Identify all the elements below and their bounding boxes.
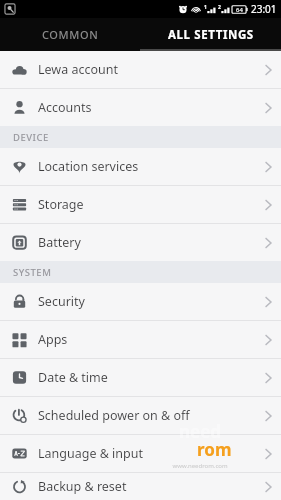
button[interactable]: Language & input: [0, 435, 281, 472]
staticText: DEVICE: [13, 131, 49, 144]
button[interactable]: ALL SETTINGS: [140, 18, 281, 51]
staticText: 23:01: [251, 2, 277, 16]
button[interactable]: Apps: [0, 321, 281, 358]
staticText: 1: [204, 4, 207, 11]
button[interactable]: Accounts: [0, 89, 281, 126]
staticText: SYSTEM: [13, 266, 52, 279]
staticText: Storage: [38, 196, 255, 213]
staticText: Scheduled power on & off: [38, 407, 255, 424]
staticText: COMMON: [42, 27, 99, 42]
staticText: ALL SETTINGS: [168, 27, 254, 43]
button[interactable]: Backup & reset: [0, 473, 281, 500]
staticText: Backup & reset: [38, 478, 255, 495]
staticText: Location services: [38, 158, 255, 175]
button[interactable]: Date & time: [0, 359, 281, 396]
staticText: Accounts: [38, 99, 255, 116]
staticText: 64: [236, 6, 243, 14]
staticText: need: [179, 420, 222, 443]
button[interactable]: Security: [0, 283, 281, 320]
staticText: Apps: [38, 331, 255, 348]
staticText: www.needrom.com: [172, 462, 228, 470]
staticText: 2: [218, 4, 221, 11]
staticText: Date & time: [38, 369, 255, 386]
staticText: Lewa account: [38, 61, 255, 78]
button[interactable]: Battery: [0, 224, 281, 261]
button[interactable]: Scheduled power on & off: [0, 397, 281, 434]
staticText: rom: [197, 438, 232, 461]
button[interactable]: Location services: [0, 148, 281, 185]
button[interactable]: COMMON: [0, 18, 140, 51]
staticText: Language & input: [38, 445, 255, 462]
staticText: Battery: [38, 234, 255, 251]
staticText: Security: [38, 293, 255, 310]
button[interactable]: Lewa account: [0, 51, 281, 88]
button[interactable]: Storage: [0, 186, 281, 223]
